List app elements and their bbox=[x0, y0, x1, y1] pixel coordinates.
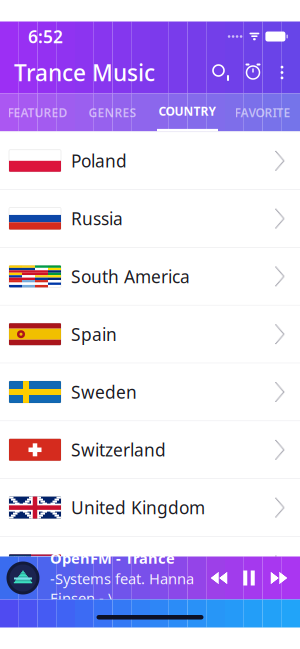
staticText: GENRES bbox=[88, 104, 136, 120]
staticText: FAVORITE bbox=[234, 104, 290, 120]
button[interactable]: FAVORITE bbox=[225, 93, 300, 131]
button[interactable]: South America bbox=[0, 248, 300, 306]
button[interactable]: Pause bbox=[241, 570, 257, 585]
button[interactable]: Poland bbox=[0, 132, 300, 190]
staticText: Trance Music bbox=[14, 57, 155, 87]
staticText: United Kingdom bbox=[71, 496, 205, 519]
button[interactable]: Sleep timer bbox=[230, 63, 262, 81]
staticText: South America bbox=[71, 265, 190, 288]
button[interactable]: GENRES bbox=[75, 93, 150, 131]
staticText: Sweden bbox=[71, 380, 137, 403]
staticText: FEATURED bbox=[7, 104, 67, 120]
button[interactable]: USA bbox=[0, 537, 300, 595]
button[interactable]: Previous bbox=[210, 571, 228, 585]
button[interactable]: Next bbox=[270, 571, 288, 585]
button[interactable]: More options bbox=[262, 63, 290, 81]
button[interactable]: Station artwork bbox=[0, 560, 41, 596]
staticText: Spain bbox=[71, 323, 117, 346]
staticText: Russia bbox=[71, 207, 123, 230]
staticText: USA bbox=[71, 554, 105, 577]
button[interactable]: COUNTRY bbox=[150, 93, 225, 131]
staticText: Switzerland bbox=[71, 438, 166, 461]
button[interactable]: Sweden bbox=[0, 363, 300, 421]
button[interactable]: Spain bbox=[0, 306, 300, 363]
button[interactable]: Search bbox=[211, 63, 230, 82]
button[interactable]: United Kingdom bbox=[0, 479, 300, 537]
staticText: COUNTRY bbox=[158, 103, 216, 119]
button[interactable]: Switzerland bbox=[0, 421, 300, 479]
staticText: -Systems feat. Hanna Finsen - \ bbox=[50, 569, 194, 608]
button[interactable]: Russia bbox=[0, 190, 300, 248]
staticText: OpenFM - Trance bbox=[50, 548, 175, 568]
staticText: Poland bbox=[71, 149, 127, 172]
staticText: 6:52 bbox=[28, 25, 63, 48]
button[interactable]: FEATURED bbox=[0, 93, 75, 131]
